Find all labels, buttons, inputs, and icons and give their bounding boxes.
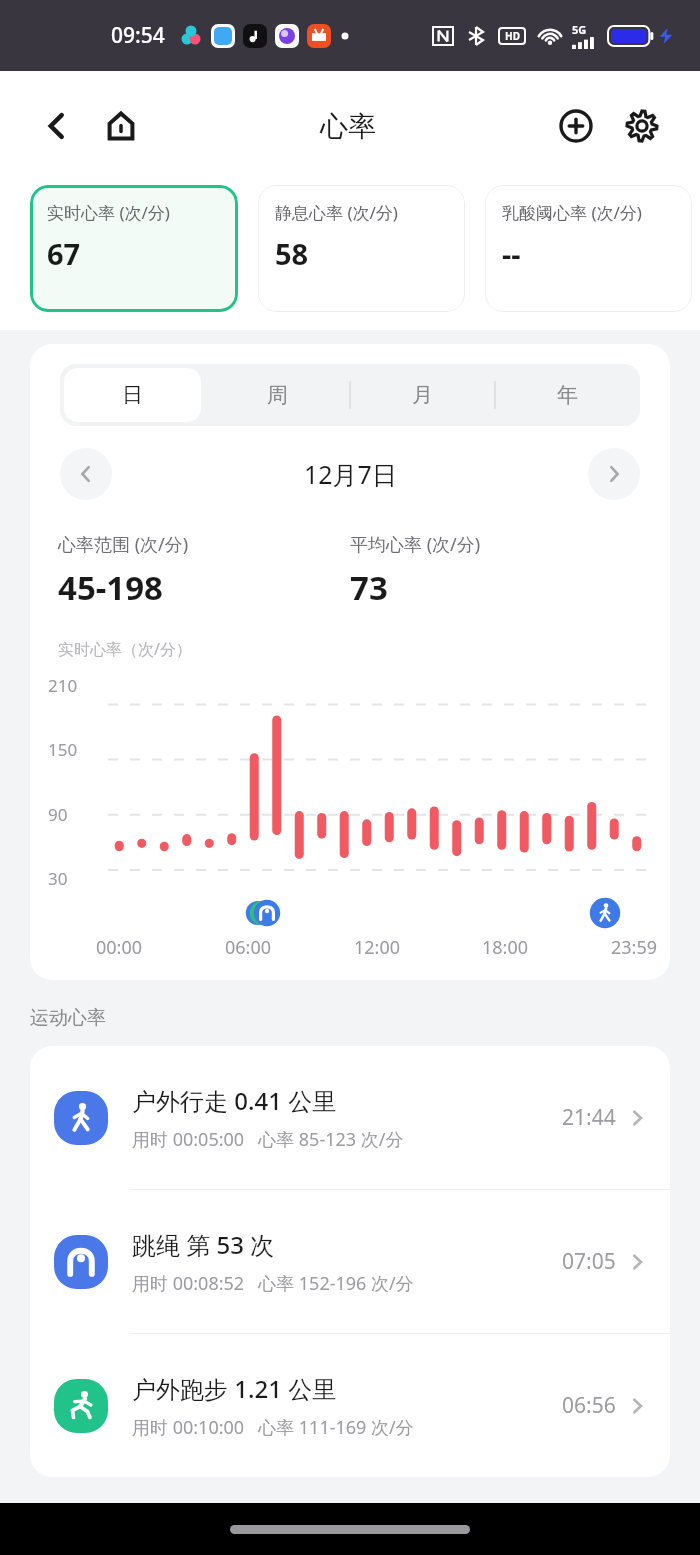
button[interactable]: 年 [499, 368, 636, 422]
staticText: 06:56 [562, 1391, 616, 1420]
staticText: 67 [47, 234, 81, 273]
staticText: 年 [557, 382, 578, 408]
staticText: 5G [572, 22, 587, 37]
button[interactable]: Settings [618, 102, 666, 150]
staticText: 运动心率 [30, 1006, 106, 1030]
button[interactable]: 静息心率 (次/分) [258, 185, 465, 312]
button[interactable]: 日 [64, 368, 201, 422]
button[interactable]: 实时心率 (次/分) [30, 185, 238, 312]
staticText: 210 [48, 674, 78, 696]
staticText: 58 [275, 234, 309, 273]
staticText: 73 [350, 565, 388, 610]
staticText: 30 [48, 867, 68, 889]
staticText: 12:00 [354, 935, 401, 960]
staticText: 跳绳 第 53 次 [132, 1228, 275, 1261]
staticText: 150 [48, 738, 78, 760]
staticText: 07:05 [562, 1247, 616, 1276]
button[interactable]: Back [34, 103, 80, 149]
staticText: 09:54 [111, 21, 165, 50]
staticText: 静息心率 (次/分) [275, 201, 398, 224]
staticText: HD [505, 29, 520, 43]
staticText: 45-198 [58, 565, 163, 610]
staticText: 心率范围 (次/分) [58, 532, 189, 557]
staticText: 户外跑步 1.21 公里 [132, 1372, 337, 1405]
staticText: 心率 [320, 109, 376, 144]
button[interactable]: 月 [354, 368, 491, 422]
button[interactable]: Add [552, 102, 600, 150]
staticText: 18:00 [482, 935, 529, 960]
button[interactable]: Next day [588, 448, 640, 500]
button[interactable]: 周 [209, 368, 346, 422]
button[interactable]: 乳酸阈心率 (次/分) [485, 185, 692, 312]
button[interactable]: 户外跑步 1.21 公里 [30, 1334, 670, 1477]
staticText: 户外行走 0.41 公里 [132, 1084, 337, 1117]
staticText: 平均心率 (次/分) [350, 532, 481, 557]
button[interactable]: Home [98, 103, 144, 149]
staticText: 实时心率 (次/分) [47, 201, 170, 224]
staticText: 用时 00:08:52 心率 152-196 次/分 [132, 1271, 414, 1296]
button[interactable]: Previous day [60, 448, 112, 500]
staticText: 21:44 [562, 1103, 616, 1132]
staticText: 实时心率（次/分） [58, 638, 192, 660]
staticText: 23:59 [611, 935, 658, 960]
staticText: 周 [267, 382, 288, 408]
staticText: 乳酸阈心率 (次/分) [502, 201, 642, 224]
staticText: -- [502, 234, 521, 273]
staticText: 90 [48, 803, 68, 825]
staticText: 用时 00:05:00 心率 85-123 次/分 [132, 1127, 404, 1152]
staticText: 用时 00:10:00 心率 111-169 次/分 [132, 1415, 414, 1440]
button[interactable]: 户外行走 0.41 公里 [30, 1046, 670, 1189]
button[interactable]: 跳绳 第 53 次 [30, 1190, 670, 1333]
staticText: 00:00 [96, 935, 143, 960]
staticText: 月 [412, 382, 433, 408]
staticText: 06:00 [225, 935, 272, 960]
staticText: 12月7日 [304, 457, 397, 491]
staticText: 日 [122, 382, 143, 408]
